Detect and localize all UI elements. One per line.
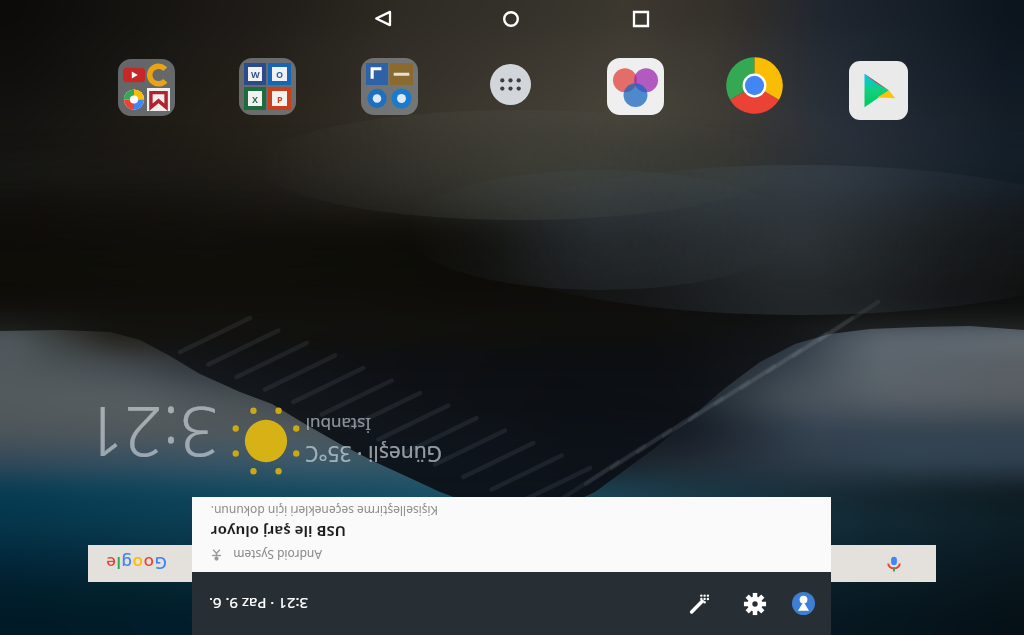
staticText: g [121, 552, 132, 575]
button[interactable]: Media folder [118, 59, 175, 116]
staticText: X [252, 93, 259, 105]
staticText: W [251, 68, 260, 80]
button[interactable]: User profile [792, 592, 815, 615]
staticText: l [116, 552, 121, 575]
button[interactable]: Tools folder [361, 58, 418, 115]
staticText: 3:21 [84, 404, 218, 480]
staticText: o [143, 552, 154, 575]
staticText: İstanbul [305, 413, 371, 436]
button[interactable]: 3:21 [80, 404, 222, 480]
staticText: USB ile şarj oluyor [210, 522, 346, 542]
staticText: P [277, 93, 283, 105]
staticText: Kişiselleştirme seçenekleri için dokunun… [210, 503, 438, 519]
button[interactable]: Recents [622, 4, 660, 34]
button[interactable]: Edit quick settings [689, 593, 711, 615]
button[interactable]: Back [364, 4, 402, 34]
staticText: Android System [233, 547, 322, 563]
staticText: o [132, 552, 143, 575]
button[interactable]: Settings [744, 593, 766, 615]
button[interactable]: Home [492, 4, 530, 34]
button[interactable]: İstanbul [305, 407, 460, 473]
staticText: O [276, 68, 284, 80]
button[interactable]: Gallery [607, 58, 664, 115]
button[interactable]: Play Store [849, 61, 908, 120]
button[interactable]: Office folder [239, 58, 296, 115]
staticText: 3:21 · Paz 9. 6. [208, 594, 308, 614]
button[interactable]: All apps [490, 64, 531, 105]
other: Voice search [885, 555, 903, 573]
button[interactable]: Kişiselleştirme seçenekleri için dokunun… [192, 497, 831, 572]
staticText: G [154, 552, 167, 575]
button[interactable]: Chrome [725, 56, 784, 115]
staticText: e [106, 552, 116, 575]
button[interactable]: e [88, 545, 936, 582]
staticText: Güneşli · 35°C [305, 439, 442, 468]
